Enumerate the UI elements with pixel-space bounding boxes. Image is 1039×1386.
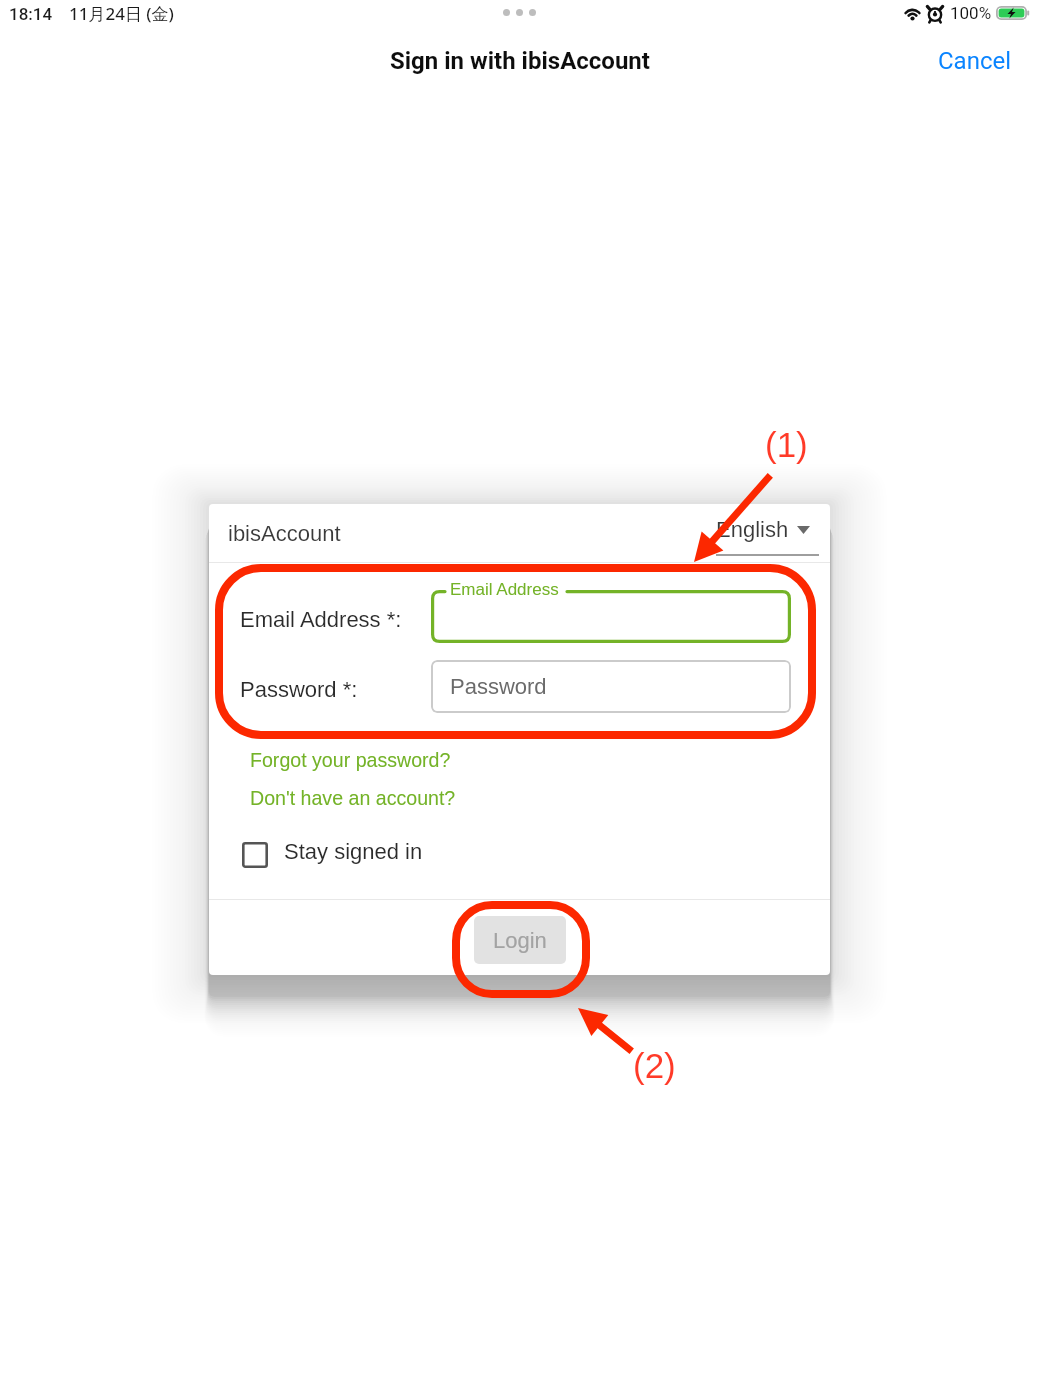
staticText: Email Address *: [240, 607, 402, 632]
staticText: ibisAccount [228, 521, 341, 546]
other: Alarm [928, 6, 942, 21]
staticText: 100% [950, 3, 992, 23]
button[interactable] [431, 590, 791, 643]
staticText: (2) [633, 1046, 676, 1085]
staticText: (1) [765, 425, 808, 464]
button[interactable]: Don't have an account? [250, 787, 456, 809]
button[interactable]: Forgot your password? [250, 749, 451, 771]
staticText: Password *: [240, 677, 358, 702]
staticText: Password [450, 674, 547, 699]
other: Battery charging [996, 6, 1030, 20]
button[interactable]: English [716, 511, 819, 556]
staticText: 11月24日 (金) [69, 2, 174, 25]
button[interactable]: Stay signed in [242, 838, 423, 864]
staticText: Don't have an account? [250, 787, 456, 809]
staticText: Cancel [938, 47, 1012, 75]
button[interactable]: Login [474, 916, 566, 964]
button[interactable]: Password [431, 660, 791, 713]
staticText: Stay signed in [284, 839, 423, 864]
staticText: Forgot your password? [250, 749, 451, 771]
staticText: 18:14 [9, 4, 53, 24]
staticText: Email Address [450, 580, 559, 599]
staticText: English [716, 517, 789, 542]
button[interactable]: Cancel [926, 39, 1024, 83]
staticText: Sign in with ibisAccount [390, 47, 650, 75]
staticText: Login [493, 928, 547, 953]
other: Wi-Fi [903, 6, 922, 20]
